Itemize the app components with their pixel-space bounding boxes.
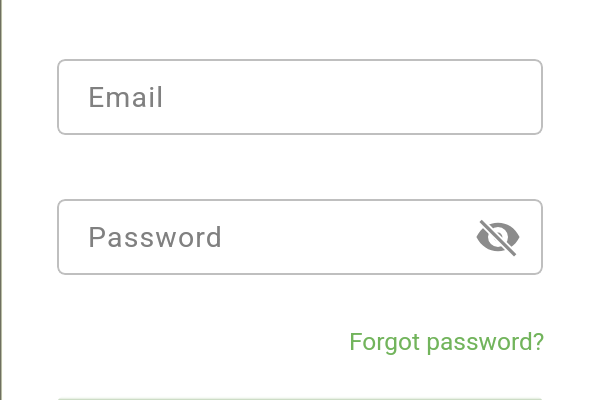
button[interactable]: Email	[57, 59, 543, 135]
button[interactable]: SIGN IN	[57, 396, 543, 400]
button[interactable]: Toggle password visibility	[470, 209, 526, 265]
staticText: Email	[88, 81, 165, 114]
button[interactable]: Forgot password?	[339, 319, 555, 364]
staticText: Password	[88, 221, 224, 254]
button[interactable]: Password	[57, 199, 543, 275]
staticText: Forgot password?	[349, 327, 545, 356]
